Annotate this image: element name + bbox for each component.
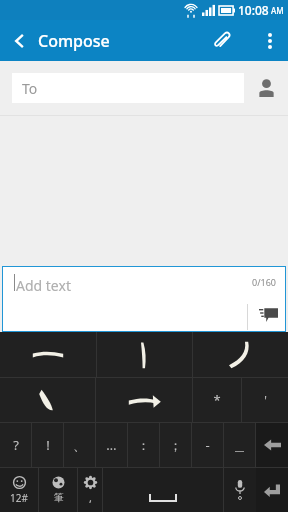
button[interactable]: Enter: [256, 468, 288, 512]
button[interactable]: To: [12, 73, 244, 103]
staticText: ,: [89, 490, 92, 505]
button[interactable]: -: [192, 423, 223, 467]
button[interactable]: Add text: [2, 266, 286, 332]
button[interactable]: …: [96, 423, 127, 467]
button[interactable]: Backspace: [256, 423, 288, 467]
staticText: *: [213, 391, 221, 409]
button[interactable]: Pick contact: [244, 66, 288, 110]
button[interactable]: Back: [0, 21, 40, 61]
button[interactable]: *: [193, 378, 241, 422]
staticText: AM: [271, 5, 284, 16]
button[interactable]: ': [242, 378, 288, 422]
button[interactable]: Voice input: [224, 468, 256, 512]
button[interactable]: Space: [103, 468, 223, 512]
staticText: Compose: [38, 30, 110, 52]
button[interactable]: ：: [128, 423, 159, 467]
button[interactable]: 、: [64, 423, 95, 467]
button[interactable]: More options: [252, 20, 288, 61]
staticText: 10:08: [238, 2, 269, 18]
button[interactable]: Send message: [250, 296, 286, 332]
button[interactable]: Stroke shu: [97, 332, 192, 377]
button[interactable]: !: [32, 423, 63, 467]
button[interactable]: ?: [0, 423, 31, 467]
button[interactable]: ；: [160, 423, 191, 467]
staticText: 12#: [10, 491, 28, 505]
button[interactable]: Attach: [202, 21, 242, 61]
button[interactable]: Settings: [78, 468, 102, 512]
button[interactable]: Symbols: [0, 468, 38, 512]
staticText: 、: [73, 437, 86, 453]
staticText: ；: [169, 437, 182, 453]
button[interactable]: Stroke dian: [0, 378, 95, 422]
staticText: 0/160: [252, 276, 276, 288]
staticText: 筆: [54, 491, 64, 504]
button[interactable]: Stroke zhe: [96, 378, 192, 422]
button[interactable]: ＿: [224, 423, 255, 467]
button[interactable]: Stroke pie: [193, 332, 288, 377]
staticText: Add text: [16, 276, 71, 295]
staticText: ': [264, 392, 267, 408]
staticText: ?: [13, 436, 19, 454]
button[interactable]: Change input language: [39, 468, 77, 512]
button[interactable]: Stroke heng: [0, 332, 96, 377]
staticText: …: [106, 436, 117, 454]
staticText: ＿: [233, 437, 246, 453]
staticText: !: [46, 436, 50, 454]
staticText: ：: [137, 437, 150, 453]
staticText: To: [22, 79, 38, 98]
staticText: -: [205, 436, 210, 454]
